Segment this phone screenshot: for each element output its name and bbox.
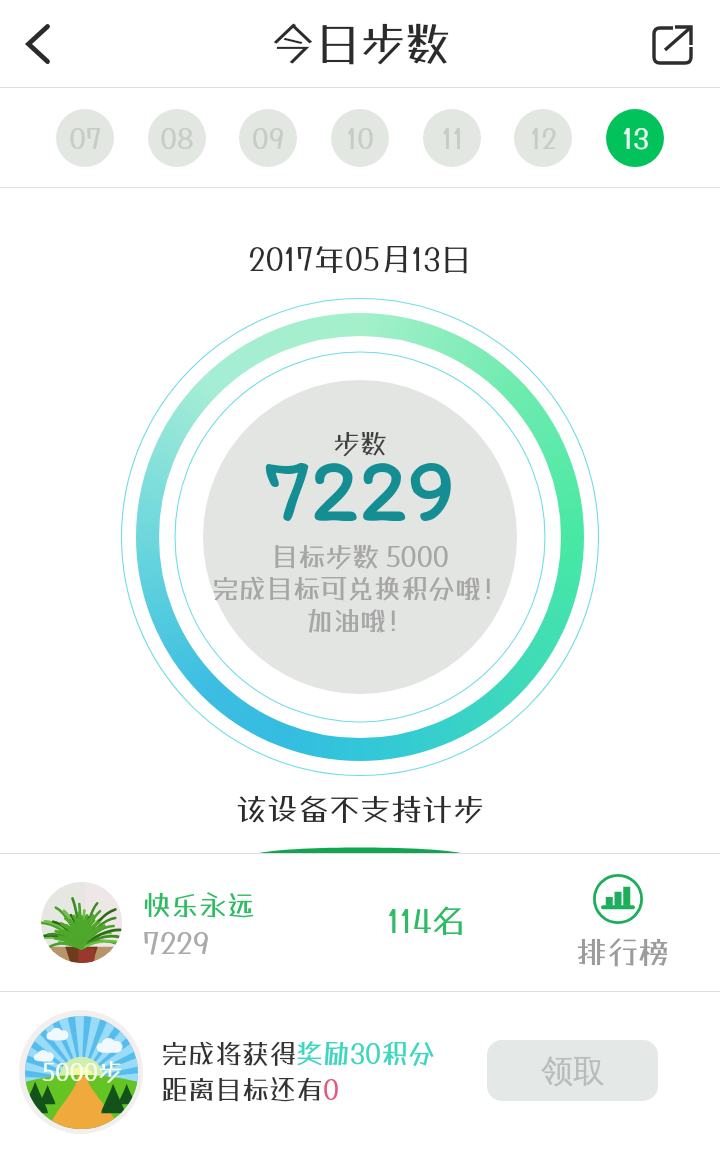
staticText: 步数 [110, 427, 610, 459]
staticText: 奖励30积分 [296, 1037, 436, 1069]
staticText: 7229 [110, 434, 610, 544]
staticText: 5000步 [42, 1057, 122, 1085]
button[interactable]: 09 [239, 109, 297, 167]
staticText: 排行榜 [576, 934, 669, 971]
staticText: 今日步数 [270, 17, 451, 70]
staticText: 10 [346, 122, 374, 155]
staticText: 08 [160, 122, 194, 155]
staticText: 目标步数 5000 [271, 540, 449, 572]
staticText: 加油哦！ [306, 604, 414, 636]
staticText: 领取 [541, 1051, 605, 1091]
button[interactable]: 11 [423, 109, 481, 167]
staticText: 12 [530, 122, 557, 155]
staticText: 完成将获得 [161, 1037, 296, 1069]
button[interactable]: 10 [331, 109, 389, 167]
staticText: 距离目标还有 [161, 1073, 323, 1105]
staticText: 07 [69, 122, 102, 155]
button[interactable]: 13 [606, 109, 664, 167]
staticText: 11 [441, 122, 464, 155]
staticText: 快乐永远 [143, 889, 256, 922]
staticText: 该设备不支持计步 [0, 791, 720, 828]
staticText: 114名 [387, 902, 464, 940]
staticText: 0 [323, 1073, 340, 1105]
staticText: 13 [622, 122, 649, 155]
staticText: 2017年05月13日 [0, 241, 720, 278]
button[interactable]: Share [640, 9, 710, 79]
staticText: 7229 [143, 925, 210, 960]
button[interactable]: 12 [514, 109, 572, 167]
button[interactable]: 07 [56, 109, 114, 167]
button[interactable]: 08 [148, 109, 206, 167]
staticText: 完成目标可兑换积分哦！ [212, 572, 509, 604]
button[interactable]: Back [3, 9, 73, 79]
staticText: 09 [252, 122, 284, 155]
button[interactable]: 领取 [487, 1040, 658, 1101]
button[interactable]: 快乐永远 [0, 854, 720, 991]
